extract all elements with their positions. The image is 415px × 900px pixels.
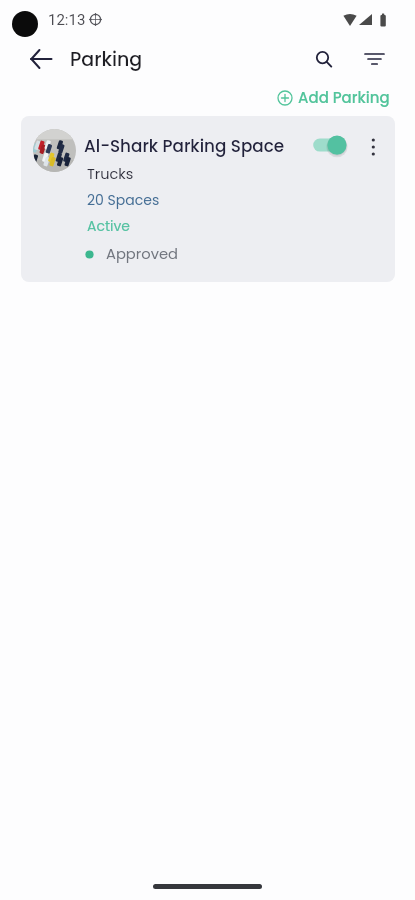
button[interactable]: Toggle parking active	[311, 130, 349, 158]
button[interactable]: Search	[309, 45, 341, 77]
staticText: Al-Shark Parking Space	[84, 134, 285, 158]
button[interactable]: Add Parking	[275, 85, 392, 110]
button[interactable]: More options	[361, 136, 383, 158]
staticText: 12:13	[48, 11, 86, 29]
staticText: Trucks	[87, 164, 134, 184]
button[interactable]: Filter	[358, 43, 390, 75]
staticText: 20 Spaces	[87, 190, 160, 210]
button[interactable]: Back	[25, 43, 57, 75]
button[interactable]: Al-Shark Parking Space	[21, 116, 395, 282]
staticText: Add Parking	[298, 87, 390, 108]
staticText: Active	[87, 216, 131, 236]
staticText: Approved	[106, 244, 178, 265]
staticText: Parking	[70, 46, 143, 73]
